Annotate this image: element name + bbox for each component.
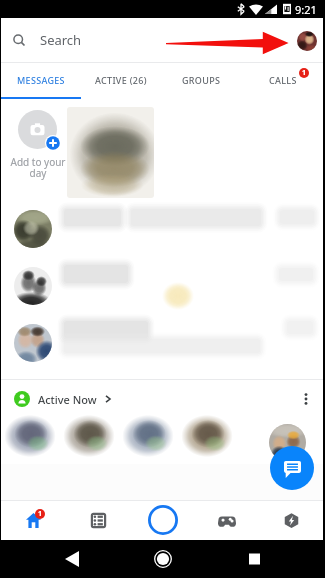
staticText: CALLS (269, 74, 297, 86)
button[interactable]: Active friend (2, 413, 58, 459)
button[interactable]: New message (270, 446, 314, 490)
button[interactable]: Chats (66, 500, 131, 540)
button[interactable]: Active Now (1, 391, 119, 407)
button[interactable]: Discover (259, 500, 323, 540)
button[interactable]: Home (1, 500, 66, 540)
button[interactable]: Active friend (269, 424, 306, 461)
staticText: ACTIVE (26) (95, 74, 147, 86)
button[interactable]: Active friend (179, 413, 235, 459)
staticText: 1 (38, 509, 43, 519)
button[interactable]: ACTIVE (26) (81, 63, 161, 99)
staticText: Active Now (38, 392, 97, 407)
button[interactable]: Camera (131, 500, 195, 540)
staticText: Search (40, 31, 82, 49)
button[interactable]: More options (291, 384, 321, 414)
button[interactable] (1, 315, 323, 379)
button[interactable]: CALLS (242, 63, 323, 99)
staticText: 9:21 (295, 2, 317, 17)
staticText: Add to your day (10, 155, 66, 180)
button[interactable] (67, 107, 154, 198)
button[interactable]: Profile (297, 31, 317, 51)
staticText: 1 (302, 68, 307, 78)
button[interactable]: Active friend (61, 413, 117, 459)
button[interactable] (1, 201, 323, 258)
button[interactable]: MESSAGES (1, 63, 81, 99)
button[interactable]: GROUPS (161, 63, 242, 99)
button[interactable]: Add to your day (1, 99, 74, 201)
staticText: MESSAGES (17, 74, 65, 86)
staticText: GROUPS (182, 74, 221, 86)
button[interactable]: Search (1, 18, 323, 62)
button[interactable]: Games (195, 500, 259, 540)
button[interactable] (1, 258, 323, 315)
button[interactable]: Active friend (120, 413, 176, 459)
